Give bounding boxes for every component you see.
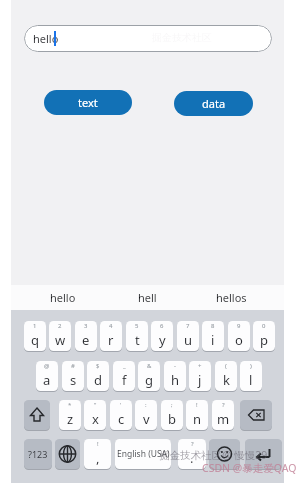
staticText: 4 [109, 322, 113, 330]
staticText: h [171, 371, 180, 389]
staticText: c [118, 410, 125, 428]
button[interactable]: hellos [196, 286, 266, 309]
staticText: ; [171, 401, 173, 409]
button[interactable]: : [135, 400, 157, 430]
staticText: hello [50, 290, 76, 305]
button[interactable]: hell [112, 286, 182, 309]
staticText: 5 [135, 322, 139, 330]
staticText: k [223, 371, 230, 389]
button[interactable] [55, 439, 80, 469]
staticText: English (USA) [117, 448, 170, 460]
button[interactable]: ? [178, 439, 206, 469]
staticText: g [145, 371, 153, 389]
staticText: text [78, 95, 98, 110]
staticText: j [198, 371, 202, 389]
button[interactable]: # [62, 361, 84, 391]
staticText: e [82, 331, 90, 349]
button[interactable]: $ [87, 361, 109, 391]
button[interactable] [24, 25, 272, 52]
staticText: v [143, 410, 150, 428]
button[interactable]: _ [113, 361, 135, 391]
staticText: x [92, 410, 99, 428]
button[interactable] [209, 439, 240, 469]
button[interactable]: ; [161, 400, 183, 430]
button[interactable]: 4 [100, 321, 122, 351]
button[interactable]: ? [212, 400, 234, 430]
staticText: z [67, 410, 74, 428]
button[interactable] [240, 400, 272, 430]
staticText: 9 [237, 322, 241, 330]
staticText: : [145, 401, 147, 409]
staticText: hell [138, 290, 157, 305]
button[interactable]: ! [186, 400, 208, 430]
staticText: & [147, 362, 152, 370]
staticText: ( [225, 362, 227, 370]
button[interactable]: ' [110, 400, 132, 430]
button[interactable]: 1 [24, 321, 46, 351]
button[interactable]: 6 [151, 321, 173, 351]
staticText: 0 [262, 322, 266, 330]
staticText: ) [250, 362, 252, 370]
staticText: 8 [211, 322, 215, 330]
staticText: d [94, 371, 102, 389]
staticText: q [31, 331, 39, 349]
staticText: $ [96, 362, 100, 370]
button[interactable]: data [174, 91, 253, 116]
staticText: w [55, 331, 66, 349]
button[interactable]: " [84, 400, 106, 430]
button[interactable]: @ [36, 361, 58, 391]
staticText: 7 [186, 322, 190, 330]
button[interactable]: 5 [126, 321, 148, 351]
staticText: i [211, 331, 215, 349]
button[interactable]: ?123 [24, 439, 52, 469]
staticText: . [190, 449, 194, 467]
staticText: ? [191, 440, 194, 448]
button[interactable]: 3 [75, 321, 97, 351]
button[interactable]: 8 [202, 321, 224, 351]
button[interactable]: ) [240, 361, 262, 391]
staticText: _ [123, 362, 126, 370]
staticText: hello [33, 31, 59, 46]
button[interactable]: * [59, 400, 81, 430]
staticText: n [193, 410, 202, 428]
staticText: * [68, 401, 72, 409]
staticText: ' [120, 401, 122, 409]
staticText: a [43, 371, 51, 389]
staticText: t [135, 331, 140, 349]
staticText: ! [196, 401, 198, 409]
staticText: o [235, 331, 243, 349]
staticText: p [260, 331, 268, 349]
staticText: " [94, 401, 97, 409]
staticText: 6 [160, 322, 164, 330]
staticText: 掘金技术社区@ 慢慢29 [159, 448, 268, 462]
button[interactable]: - [164, 361, 186, 391]
staticText: 3 [84, 322, 88, 330]
button[interactable]: 2 [49, 321, 71, 351]
staticText: m [217, 410, 230, 428]
button[interactable] [24, 400, 50, 430]
button[interactable] [245, 439, 282, 469]
button[interactable]: hello [28, 286, 98, 309]
staticText: s [70, 371, 77, 389]
button[interactable]: English (USA) [115, 439, 171, 469]
button[interactable]: 9 [228, 321, 250, 351]
button[interactable]: + [189, 361, 211, 391]
button[interactable]: 0 [253, 321, 275, 351]
button[interactable]: & [138, 361, 160, 391]
staticText: y [159, 331, 166, 349]
staticText: , [96, 449, 100, 467]
staticText: f [122, 371, 127, 389]
staticText: data [202, 96, 226, 111]
staticText: 1 [33, 322, 37, 330]
staticText: u [184, 331, 193, 349]
button[interactable]: 7 [177, 321, 199, 351]
staticText: - [174, 362, 176, 370]
button[interactable]: ( [215, 361, 237, 391]
staticText: ?123 [28, 448, 48, 460]
button[interactable]: ! [84, 439, 111, 469]
staticText: hellos [216, 290, 247, 305]
staticText: @ [44, 362, 50, 370]
button[interactable]: text [44, 90, 132, 115]
staticText: 2 [58, 322, 62, 330]
staticText: b [168, 410, 176, 428]
